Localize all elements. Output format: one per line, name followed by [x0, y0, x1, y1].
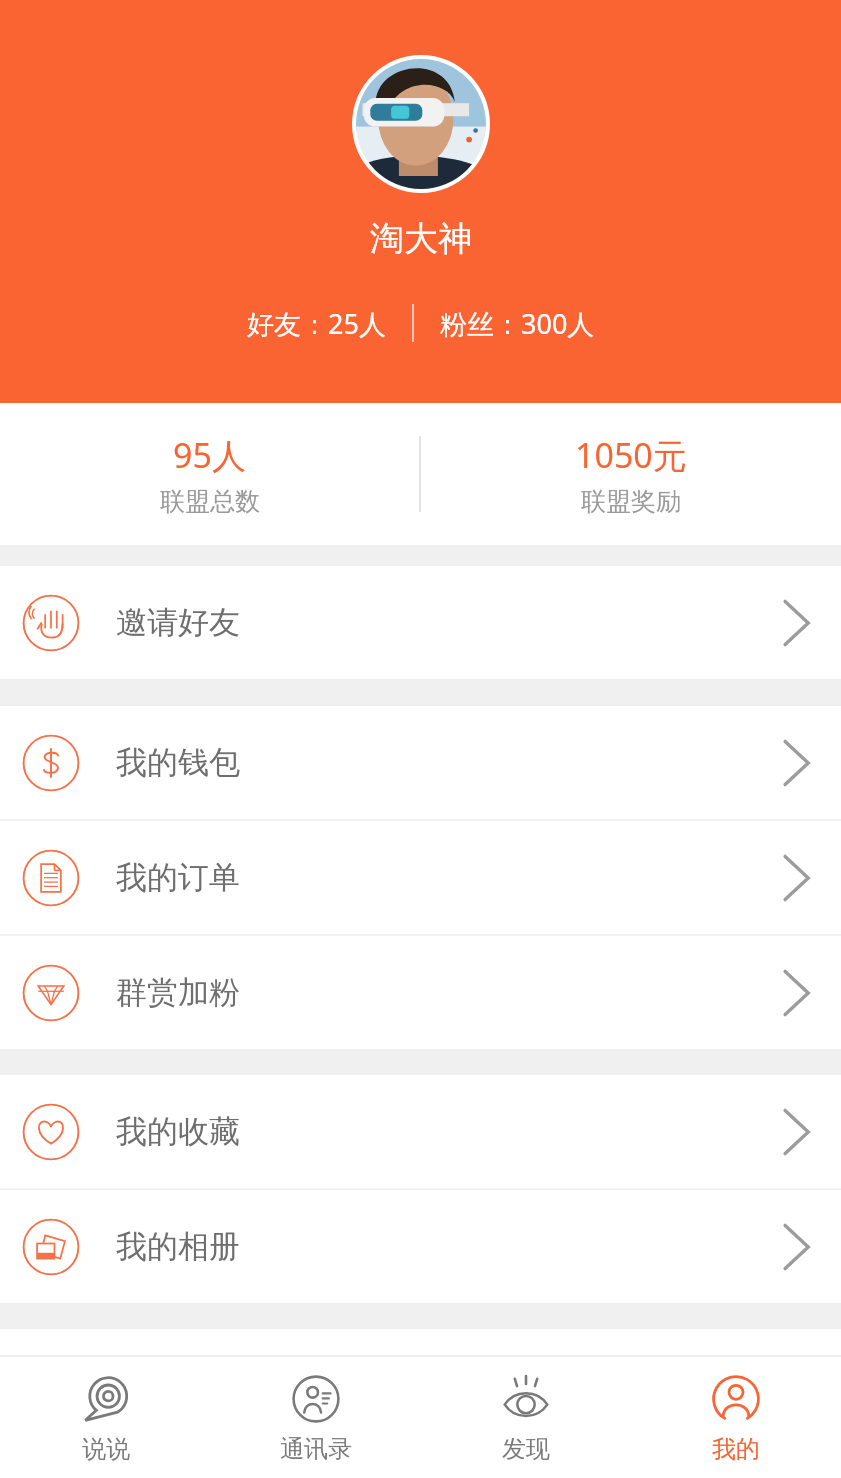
- button[interactable]: 群赏加粉: [0, 936, 841, 1049]
- staticText: 我的: [712, 1434, 760, 1464]
- staticText: 我的钱包: [116, 743, 240, 782]
- button[interactable]: 1050元: [421, 432, 841, 517]
- button[interactable]: 我的: [631, 1357, 841, 1478]
- staticText: 群赏加粉: [116, 973, 240, 1012]
- staticText: 联盟总数: [160, 486, 260, 517]
- staticText: 淘大神: [370, 217, 472, 260]
- button[interactable]: 邀请好友: [0, 566, 841, 679]
- button[interactable]: 我的收藏: [0, 1075, 841, 1188]
- staticText: 我的订单: [116, 858, 240, 897]
- staticText: 联盟奖励: [581, 486, 681, 517]
- button[interactable]: 通讯录: [211, 1357, 421, 1478]
- staticText: 95人: [173, 432, 246, 478]
- staticText: 1050元: [575, 432, 687, 478]
- button[interactable]: 95人: [0, 432, 419, 517]
- staticText: 粉丝：300人: [440, 305, 595, 342]
- button[interactable]: 我的钱包: [0, 706, 841, 819]
- staticText: 说说: [82, 1434, 130, 1464]
- staticText: 好友：25人: [247, 305, 386, 342]
- button[interactable]: 说说: [0, 1357, 211, 1478]
- button[interactable]: 我的相册: [0, 1190, 841, 1303]
- button[interactable]: 我的订单: [0, 821, 841, 934]
- staticText: 我的收藏: [116, 1112, 240, 1151]
- button[interactable]: 发现: [421, 1357, 631, 1478]
- staticText: 我的设置: [116, 1366, 240, 1405]
- staticText: 邀请好友: [116, 603, 240, 642]
- button[interactable]: 我的设置: [0, 1329, 841, 1442]
- staticText: 我的相册: [116, 1227, 240, 1266]
- staticText: 通讯录: [280, 1434, 352, 1464]
- staticText: 发现: [502, 1434, 550, 1464]
